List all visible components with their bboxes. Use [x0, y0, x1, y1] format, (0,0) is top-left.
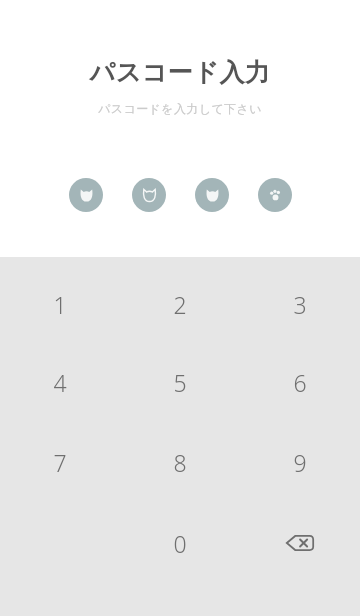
button[interactable]: 4 — [0, 367, 120, 397]
staticText: 6 — [293, 367, 307, 397]
button[interactable]: 6 — [240, 367, 360, 397]
staticText: 1 — [53, 289, 67, 319]
button[interactable]: Passcode digit 1 — [69, 178, 103, 212]
staticText: パスコードを入力して下さい — [0, 101, 360, 116]
button[interactable]: 5 — [120, 367, 240, 397]
staticText: 7 — [53, 447, 67, 477]
staticText: 8 — [173, 447, 187, 477]
button[interactable]: Passcode digit 3 — [195, 178, 229, 212]
staticText: 2 — [173, 289, 187, 319]
button[interactable]: Passcode digit 2 — [132, 178, 166, 212]
button[interactable]: 8 — [120, 447, 240, 477]
button[interactable]: 3 — [240, 289, 360, 319]
staticText: 3 — [293, 289, 307, 319]
button[interactable]: Passcode digit 4 — [258, 178, 292, 212]
button[interactable]: 1 — [0, 289, 120, 319]
button[interactable]: 0 — [120, 528, 240, 558]
staticText: 9 — [293, 447, 307, 477]
button[interactable]: Backspace — [240, 528, 360, 558]
staticText: 5 — [173, 367, 187, 397]
staticText: 0 — [173, 528, 187, 558]
button[interactable]: 2 — [120, 289, 240, 319]
button[interactable]: 7 — [0, 447, 120, 477]
staticText: パスコード入力 — [0, 57, 360, 88]
staticText: 4 — [53, 367, 67, 397]
button[interactable]: 9 — [240, 447, 360, 477]
